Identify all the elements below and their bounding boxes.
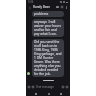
button[interactable]: Attach xyxy=(31,85,35,89)
staticText: 9:36 xyxy=(28,0,34,4)
button[interactable]: Back xyxy=(33,91,38,96)
button[interactable]: Camera xyxy=(61,85,65,89)
staticText: Text message xyxy=(36,85,54,89)
button[interactable]: More options xyxy=(65,6,68,9)
button[interactable]: Call xyxy=(60,5,64,9)
button[interactable]: Home xyxy=(46,91,51,96)
button[interactable]: Emoji xyxy=(27,85,31,89)
staticText: Did you send the stuff back on to 1986 K… xyxy=(34,40,62,76)
staticText: problems xyxy=(34,12,49,16)
button[interactable]: Video call xyxy=(55,5,59,9)
staticText: anyways I will waiver your hours and be … xyxy=(34,20,62,36)
button[interactable]: Recents xyxy=(58,91,63,96)
button[interactable]: anyways I will waiver your hours and be … xyxy=(32,19,64,37)
button[interactable]: Did you send the stuff back on to 1986 K… xyxy=(32,39,64,77)
button[interactable]: Back xyxy=(27,5,32,10)
button[interactable]: problems xyxy=(32,11,64,17)
button[interactable]: Microphone xyxy=(65,85,69,89)
staticText: Randy Bean xyxy=(33,5,51,9)
